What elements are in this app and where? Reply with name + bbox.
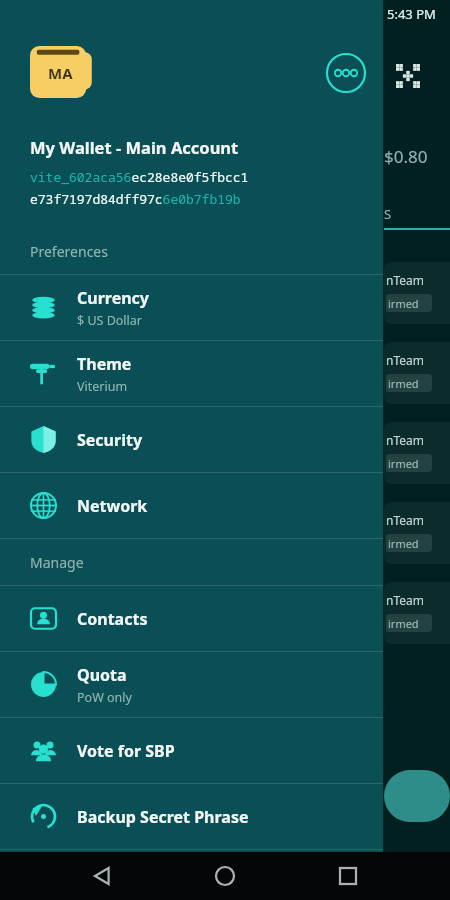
staticText: nTeam	[386, 592, 424, 608]
button[interactable]: nTeam	[384, 342, 450, 404]
button[interactable]: Back	[83, 856, 123, 896]
staticText: Manage	[30, 553, 84, 572]
button[interactable]: Recents	[328, 856, 368, 896]
button[interactable]: Security	[0, 407, 383, 472]
button[interactable]: nTeam	[384, 502, 450, 564]
button[interactable]: Contacts	[0, 586, 383, 651]
staticText: $ US Dollar	[77, 312, 142, 329]
button[interactable]: Theme	[0, 341, 383, 406]
staticText: Vote for SBP	[77, 740, 175, 762]
staticText: $0.80	[384, 145, 428, 168]
button[interactable]: Network	[0, 473, 383, 538]
staticText: nTeam	[386, 352, 424, 368]
staticText: Preferences	[30, 242, 108, 261]
button[interactable]: Backup Secret Phrase	[0, 784, 383, 849]
staticText: irmed	[388, 296, 419, 311]
button[interactable]: Currency	[0, 275, 383, 340]
staticText: irmed	[388, 376, 419, 391]
staticText: Contacts	[77, 608, 148, 630]
button[interactable]: nTeam	[384, 262, 450, 324]
button[interactable]: Quota	[0, 652, 383, 717]
staticText: irmed	[388, 536, 419, 551]
staticText: Theme	[77, 353, 132, 375]
staticText: nTeam	[386, 432, 424, 448]
staticText: Backup Secret Phrase	[77, 806, 249, 828]
staticText: S	[384, 205, 392, 223]
staticText: 5:43 PM	[387, 5, 436, 23]
staticText: Security	[77, 429, 143, 451]
staticText: irmed	[388, 616, 419, 631]
staticText: irmed	[388, 456, 419, 471]
staticText: Quota	[77, 664, 127, 686]
button[interactable]: Scan QR code	[390, 58, 426, 94]
staticText: nTeam	[386, 272, 424, 288]
staticText: nTeam	[386, 512, 424, 528]
button[interactable]: nTeam	[384, 422, 450, 484]
staticText: vite_602aca56ec28e8e0f5fbcc1	[30, 168, 249, 186]
staticText: Currency	[77, 287, 150, 309]
button[interactable]: Home	[205, 856, 245, 896]
button[interactable]: Send	[384, 770, 450, 822]
button[interactable]: More options	[325, 52, 367, 94]
staticText: e73f7197d84dff97c6e0b7fb19b	[30, 190, 241, 208]
staticText: PoW only	[77, 689, 132, 706]
staticText: Network	[77, 495, 148, 517]
staticText: My Wallet - Main Account	[30, 136, 239, 158]
button[interactable]: Vote for SBP	[0, 718, 383, 783]
staticText: MA	[48, 63, 73, 83]
button[interactable]: Wallet avatar	[30, 46, 102, 98]
button[interactable]: nTeam	[384, 582, 450, 644]
staticText: Viterium	[77, 378, 128, 395]
